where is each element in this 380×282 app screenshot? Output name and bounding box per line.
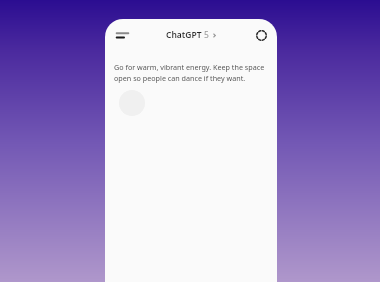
button[interactable]: New chat — [251, 25, 271, 45]
button[interactable]: ChatGPT — [162, 27, 221, 43]
staticText: ChatGPT — [166, 29, 202, 41]
staticText: 5 — [204, 29, 209, 41]
staticText: Go for warm, vibrant energy. Keep the sp… — [114, 62, 268, 83]
button[interactable]: Menu — [111, 24, 133, 46]
